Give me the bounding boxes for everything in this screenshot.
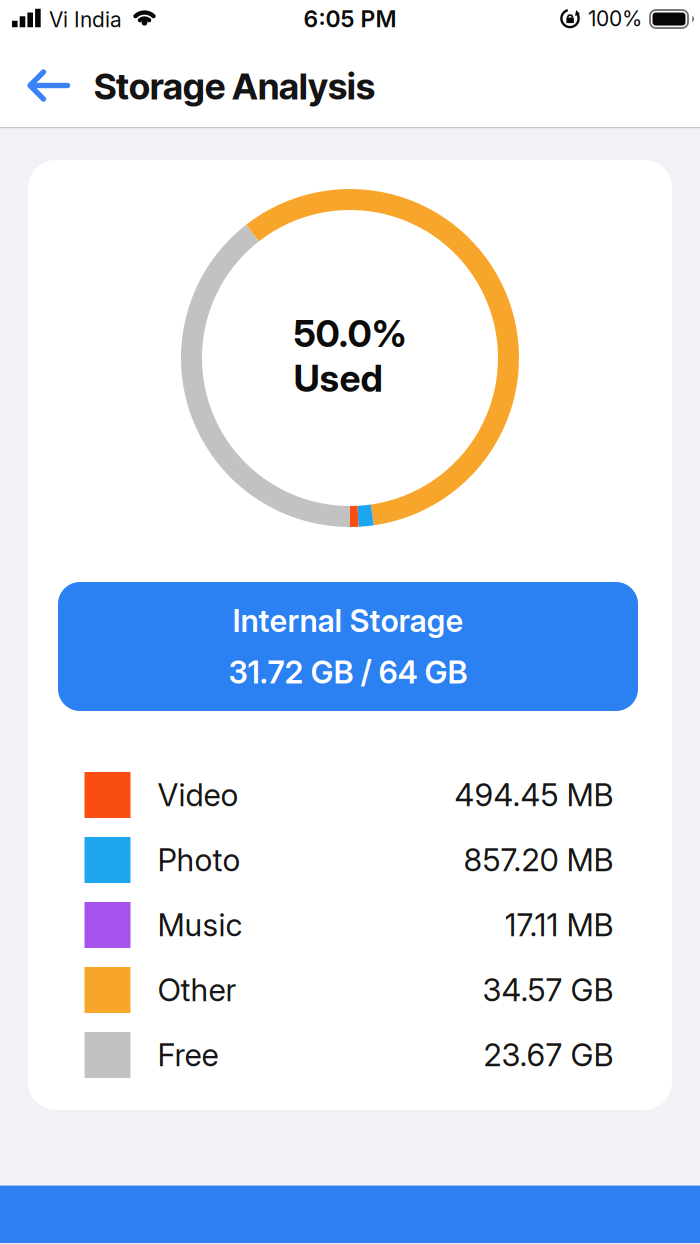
staticText: Music (157, 906, 242, 944)
staticText: Storage Analysis (94, 65, 375, 108)
staticText: 50.0% (293, 311, 406, 356)
staticText: 494.45 MB (454, 776, 613, 814)
staticText: Video (157, 776, 238, 814)
staticText: Used (293, 356, 382, 401)
staticText: 34.57 GB (482, 971, 613, 1009)
button[interactable]: Back (0, 45, 70, 125)
button[interactable]: Internal Storage (58, 582, 638, 711)
staticText: Internal Storage (232, 602, 463, 639)
staticText: 6:05 PM (303, 5, 396, 33)
staticText: Other (157, 971, 236, 1009)
staticText: Vi India (49, 7, 122, 32)
staticText: 17.11 MB (504, 906, 613, 944)
staticText: 857.20 MB (463, 841, 613, 879)
staticText: 31.72 GB / 64 GB (228, 653, 467, 691)
staticText: Free (157, 1036, 218, 1074)
staticText: 23.67 GB (483, 1036, 613, 1074)
staticText: 100% (588, 6, 642, 31)
staticText: Photo (157, 841, 240, 879)
